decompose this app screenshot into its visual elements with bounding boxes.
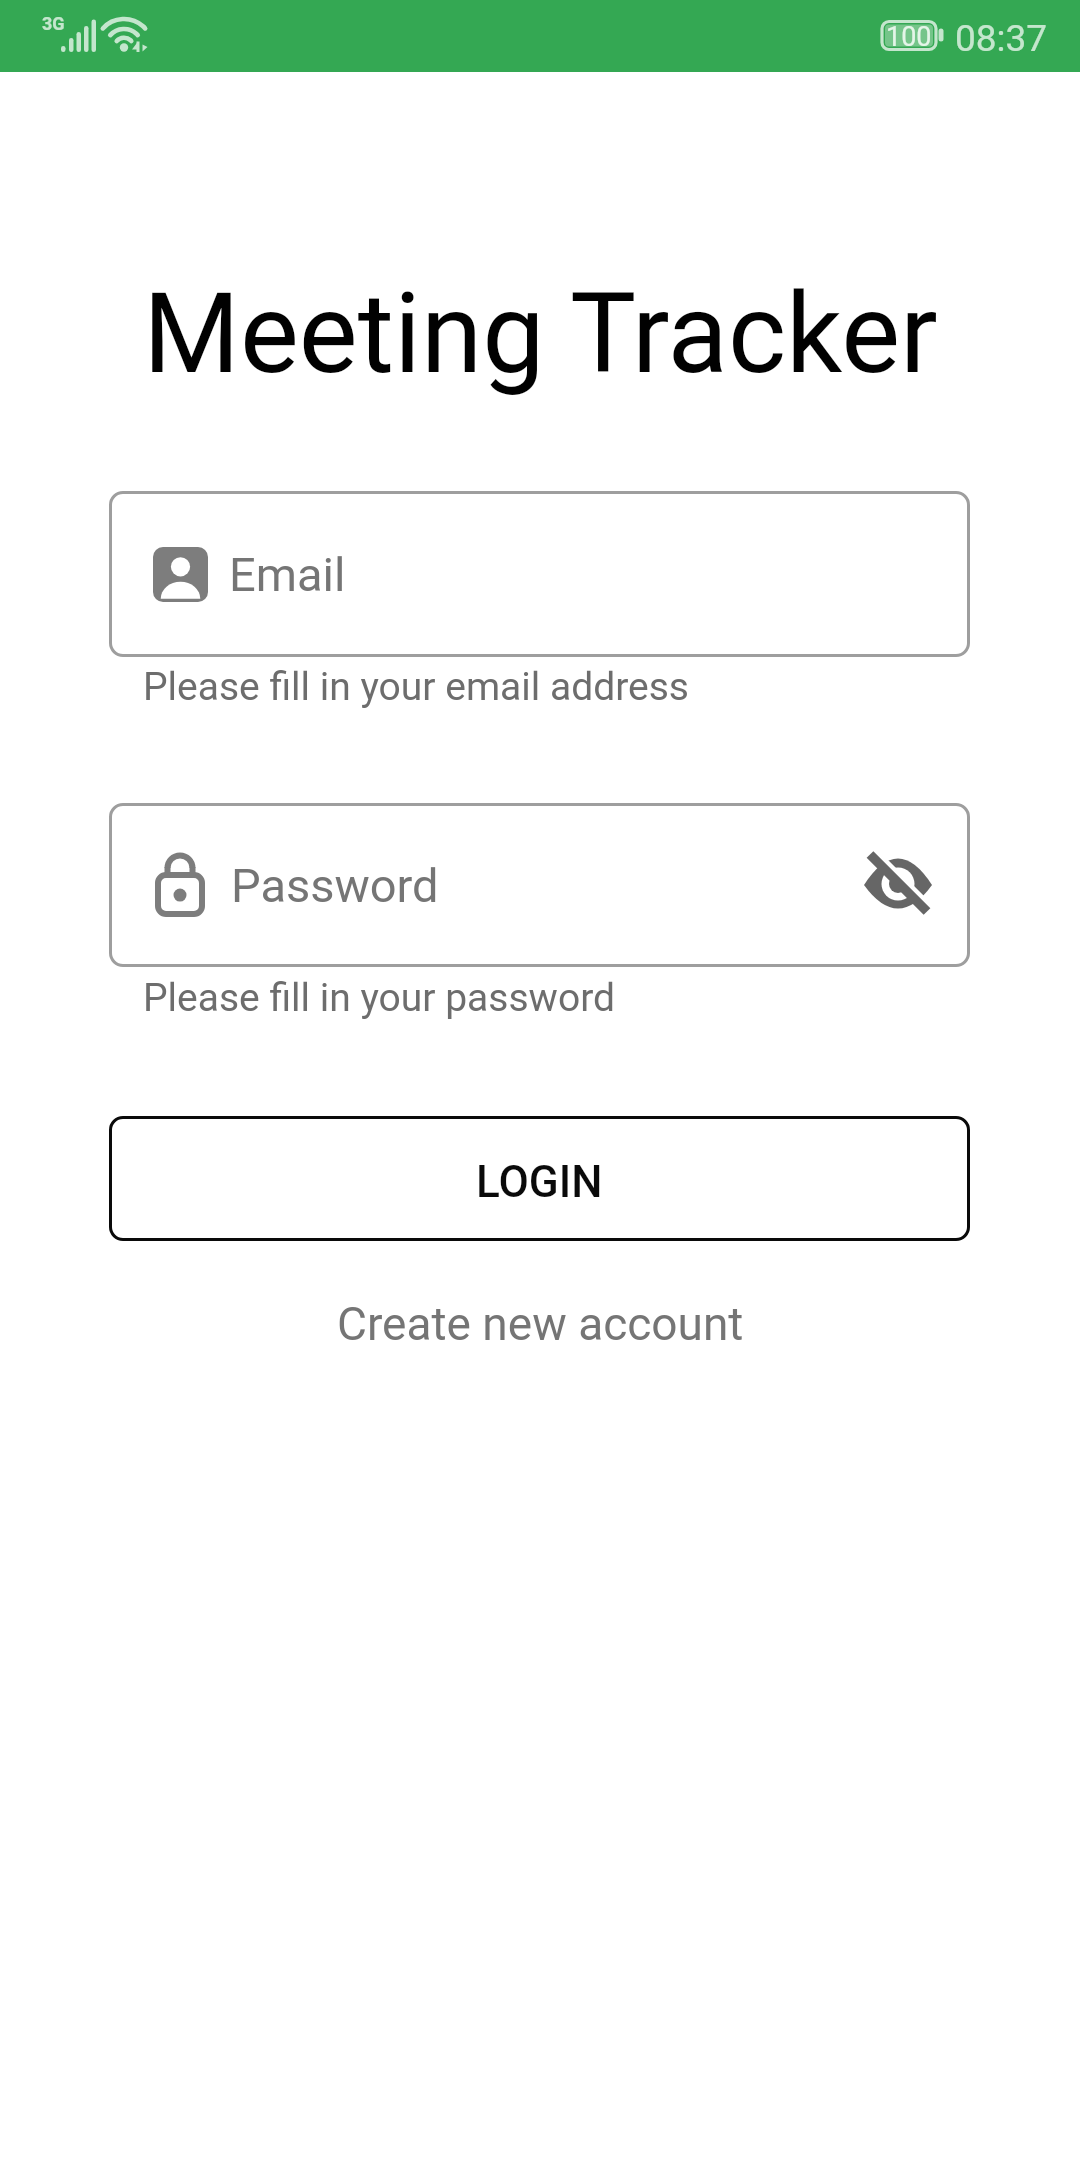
button[interactable]: Password (109, 803, 970, 967)
staticText: Meeting Tracker (143, 269, 938, 399)
button[interactable]: Email (109, 491, 970, 657)
staticText: Email (229, 547, 346, 602)
button[interactable]: LOGIN (109, 1116, 970, 1241)
button[interactable]: Create new account (0, 1296, 1080, 1352)
staticText: Please fill in your email address (143, 664, 689, 710)
staticText: 08:37 (955, 17, 1048, 60)
button[interactable] (862, 854, 932, 916)
staticText: 100 (886, 21, 932, 51)
staticText: Please fill in your password (143, 975, 615, 1021)
staticText: Create new account (337, 1297, 744, 1351)
staticText: LOGIN (476, 1156, 603, 1208)
staticText: Password (231, 858, 439, 913)
staticText: 3G (42, 13, 65, 34)
